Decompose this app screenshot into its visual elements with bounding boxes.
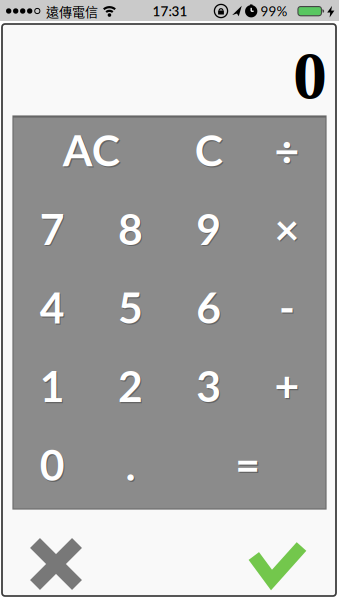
staticText: - [279, 281, 295, 333]
staticText: 9 [197, 204, 222, 255]
button[interactable]: 3 [169, 352, 248, 430]
button[interactable]: 2 [91, 352, 169, 430]
staticText: 0 [40, 439, 65, 490]
staticText: 4 [41, 283, 66, 334]
staticText: 3 [197, 361, 222, 412]
staticText: 6 [196, 281, 221, 333]
staticText: . [127, 440, 137, 491]
staticText: 2 [119, 361, 144, 412]
staticText: 8 [119, 204, 144, 255]
staticText: 99% [260, 3, 287, 19]
button[interactable]: . [91, 430, 169, 509]
staticText: 0 [41, 440, 66, 491]
staticText: 9 [196, 203, 221, 254]
staticText: 6 [197, 283, 222, 334]
staticText: 4 [40, 281, 65, 333]
button[interactable]: = [169, 430, 326, 509]
staticText: 1 [41, 361, 66, 412]
button[interactable]: 4 [13, 273, 91, 352]
staticText: 17:31 [152, 3, 187, 19]
button[interactable]: 9 [169, 195, 248, 273]
button[interactable]: AC [13, 116, 169, 195]
staticText: ÷ [274, 124, 299, 175]
staticText: AC [63, 124, 120, 175]
staticText: = [236, 440, 261, 491]
button[interactable]: 1 [13, 352, 91, 430]
staticText: AC [64, 125, 121, 177]
staticText: + [274, 360, 299, 411]
button[interactable]: × [248, 195, 326, 273]
button[interactable]: Cancel [30, 538, 82, 590]
staticText: 7 [40, 203, 65, 254]
button[interactable]: - [248, 273, 326, 352]
staticText: C [196, 125, 224, 177]
button[interactable]: 0 [13, 430, 91, 509]
button[interactable]: + [248, 352, 326, 430]
staticText: 0 [293, 38, 327, 113]
staticText: 2 [118, 360, 143, 411]
staticText: 遠傳電信 [46, 1, 98, 20]
staticText: 8 [118, 203, 143, 254]
staticText: 5 [118, 281, 143, 333]
staticText: ÷ [276, 125, 301, 177]
staticText: 5 [119, 283, 144, 334]
button[interactable]: Confirm [248, 540, 307, 591]
staticText: × [276, 204, 301, 255]
staticText: = [235, 439, 260, 490]
staticText: 3 [196, 360, 221, 411]
staticText: 1 [40, 360, 65, 411]
staticText: + [276, 361, 301, 412]
staticText: - [280, 283, 296, 334]
button[interactable]: 6 [169, 273, 248, 352]
button[interactable]: 5 [91, 273, 169, 352]
staticText: . [125, 439, 135, 490]
button[interactable]: 8 [91, 195, 169, 273]
staticText: 7 [41, 204, 66, 255]
button[interactable]: ÷ [248, 116, 326, 195]
staticText: C [195, 124, 223, 175]
button[interactable]: C [169, 116, 248, 195]
staticText: × [274, 203, 299, 254]
button[interactable]: 7 [13, 195, 91, 273]
